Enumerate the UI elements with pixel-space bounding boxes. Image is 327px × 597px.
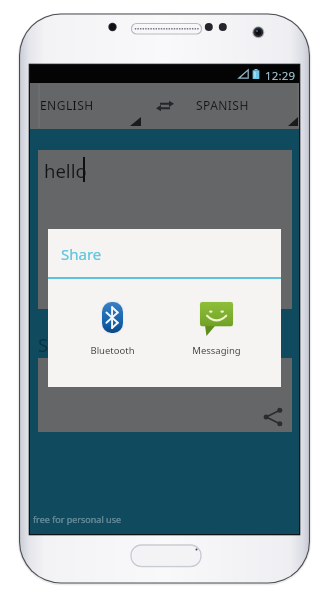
staticText: Saludos (38, 332, 107, 357)
staticText: SPANISH (196, 97, 249, 113)
staticText: hello (44, 158, 87, 183)
button[interactable]: SPANISH (180, 83, 299, 129)
button[interactable]: Messaging (178, 293, 255, 359)
button[interactable]: ENGLISH (30, 83, 150, 129)
staticText: 12:29 (265, 68, 296, 84)
staticText: Share (61, 244, 102, 264)
button[interactable]: Swap languages (150, 93, 180, 119)
staticText: ENGLISH (40, 97, 94, 113)
button[interactable]: Bluetooth (74, 293, 151, 359)
staticText: Bluetooth (90, 344, 135, 357)
staticText: Messaging (192, 344, 241, 357)
staticText: free for personal use (33, 513, 122, 525)
button[interactable]: Share (260, 404, 286, 430)
